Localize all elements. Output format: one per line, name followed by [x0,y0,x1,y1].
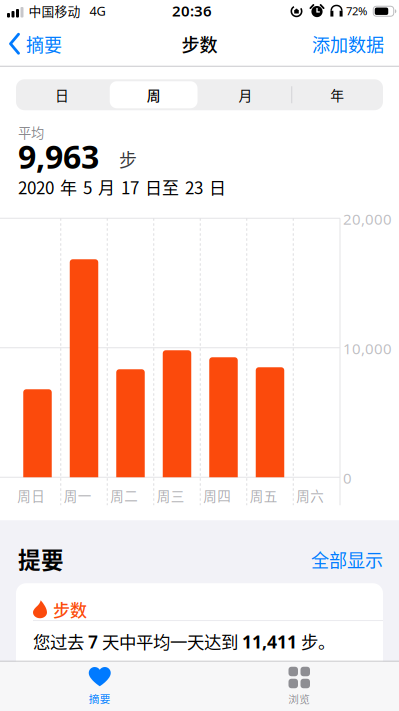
staticText: 周一 [64,485,92,505]
staticText: 11,411 [242,630,297,654]
staticText: 0 [343,468,352,488]
staticText: 20:36 [172,0,212,21]
staticText: 您过去 [33,628,88,654]
button[interactable]: 浏览 [199,662,399,705]
staticText: 周五 [250,485,278,505]
staticText: 日 [55,85,69,105]
staticText: 步数 [181,31,217,57]
button[interactable]: 周 [108,79,200,110]
staticText: 周三 [157,485,185,505]
staticText: 添加数据 [312,31,384,57]
staticText: 周四 [203,485,231,505]
staticText: 步 [119,146,137,172]
staticText: 浏览 [288,691,310,706]
staticText: 步数 [53,597,87,621]
button[interactable]: 步数 [16,583,383,675]
button[interactable]: 月 [199,79,291,110]
staticText: 20,000 [343,209,392,229]
staticText: 周二 [110,485,138,505]
staticText: 72% [346,3,367,18]
staticText: 7 [88,630,98,654]
button[interactable]: 摘要 [0,662,199,705]
staticText: 月 [238,85,252,105]
staticText: 摘要 [26,31,62,57]
staticText: 年 [330,85,344,105]
staticText: 步。 [297,628,335,654]
staticText: 提要 [18,542,64,575]
staticText: 10,000 [343,338,392,359]
button[interactable]: 摘要 [0,31,62,57]
button[interactable]: 日 [16,79,108,110]
staticText: 周 [147,85,161,105]
button[interactable]: 添加数据 [312,31,399,57]
staticText: 全部显示 [311,546,383,572]
staticText: 中国移动 [28,1,80,20]
button[interactable]: 全部显示 [311,549,383,571]
staticText: 摘要 [89,691,111,706]
staticText: 周六 [296,485,324,505]
staticText: 2020 年 5 月 17 日至 23 日 [18,174,226,199]
staticText: 平均 [18,123,44,142]
button[interactable]: 年 [291,79,383,110]
staticText: 周日 [17,485,45,505]
staticText: 4G [89,2,105,19]
staticText: 9,963 [18,134,99,178]
staticText: 天中平均一天达到 [98,628,242,654]
